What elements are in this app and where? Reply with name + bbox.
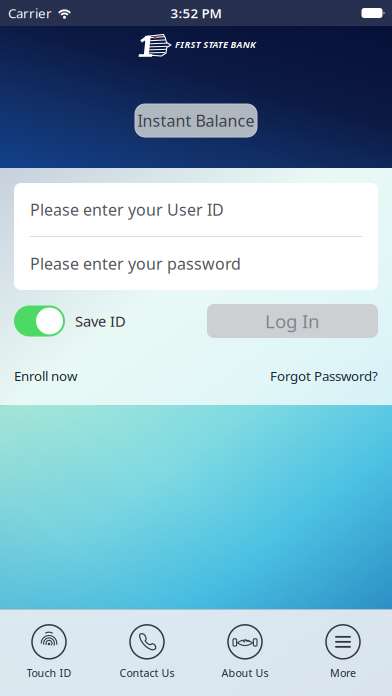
staticText: Please enter your password [30, 253, 241, 274]
staticText: Save ID [75, 311, 126, 331]
staticText: More [330, 666, 356, 680]
staticText: Carrier [8, 4, 52, 22]
staticText: Touch ID [26, 666, 71, 680]
button[interactable]: Log In [207, 304, 378, 338]
button[interactable]: Save ID [14, 305, 65, 336]
staticText: Log In [265, 309, 320, 333]
button[interactable]: Instant Balance [135, 104, 257, 137]
button[interactable]: Contact Us [98, 625, 196, 680]
button[interactable]: Forgot Password? [270, 367, 378, 385]
button[interactable]: More [294, 625, 392, 680]
button[interactable]: Touch ID [0, 625, 98, 680]
staticText: Instant Balance [137, 110, 254, 131]
staticText: Please enter your User ID [30, 199, 224, 220]
staticText: FIRST STATE BANK [175, 38, 256, 51]
button[interactable]: Enroll now [14, 367, 77, 385]
staticText: Forgot Password? [270, 367, 378, 385]
staticText: Contact Us [119, 666, 174, 680]
staticText: 3:52 PM [170, 4, 221, 22]
staticText: About Us [221, 666, 268, 680]
staticText: Enroll now [14, 367, 77, 385]
button[interactable]: About Us [196, 625, 294, 680]
